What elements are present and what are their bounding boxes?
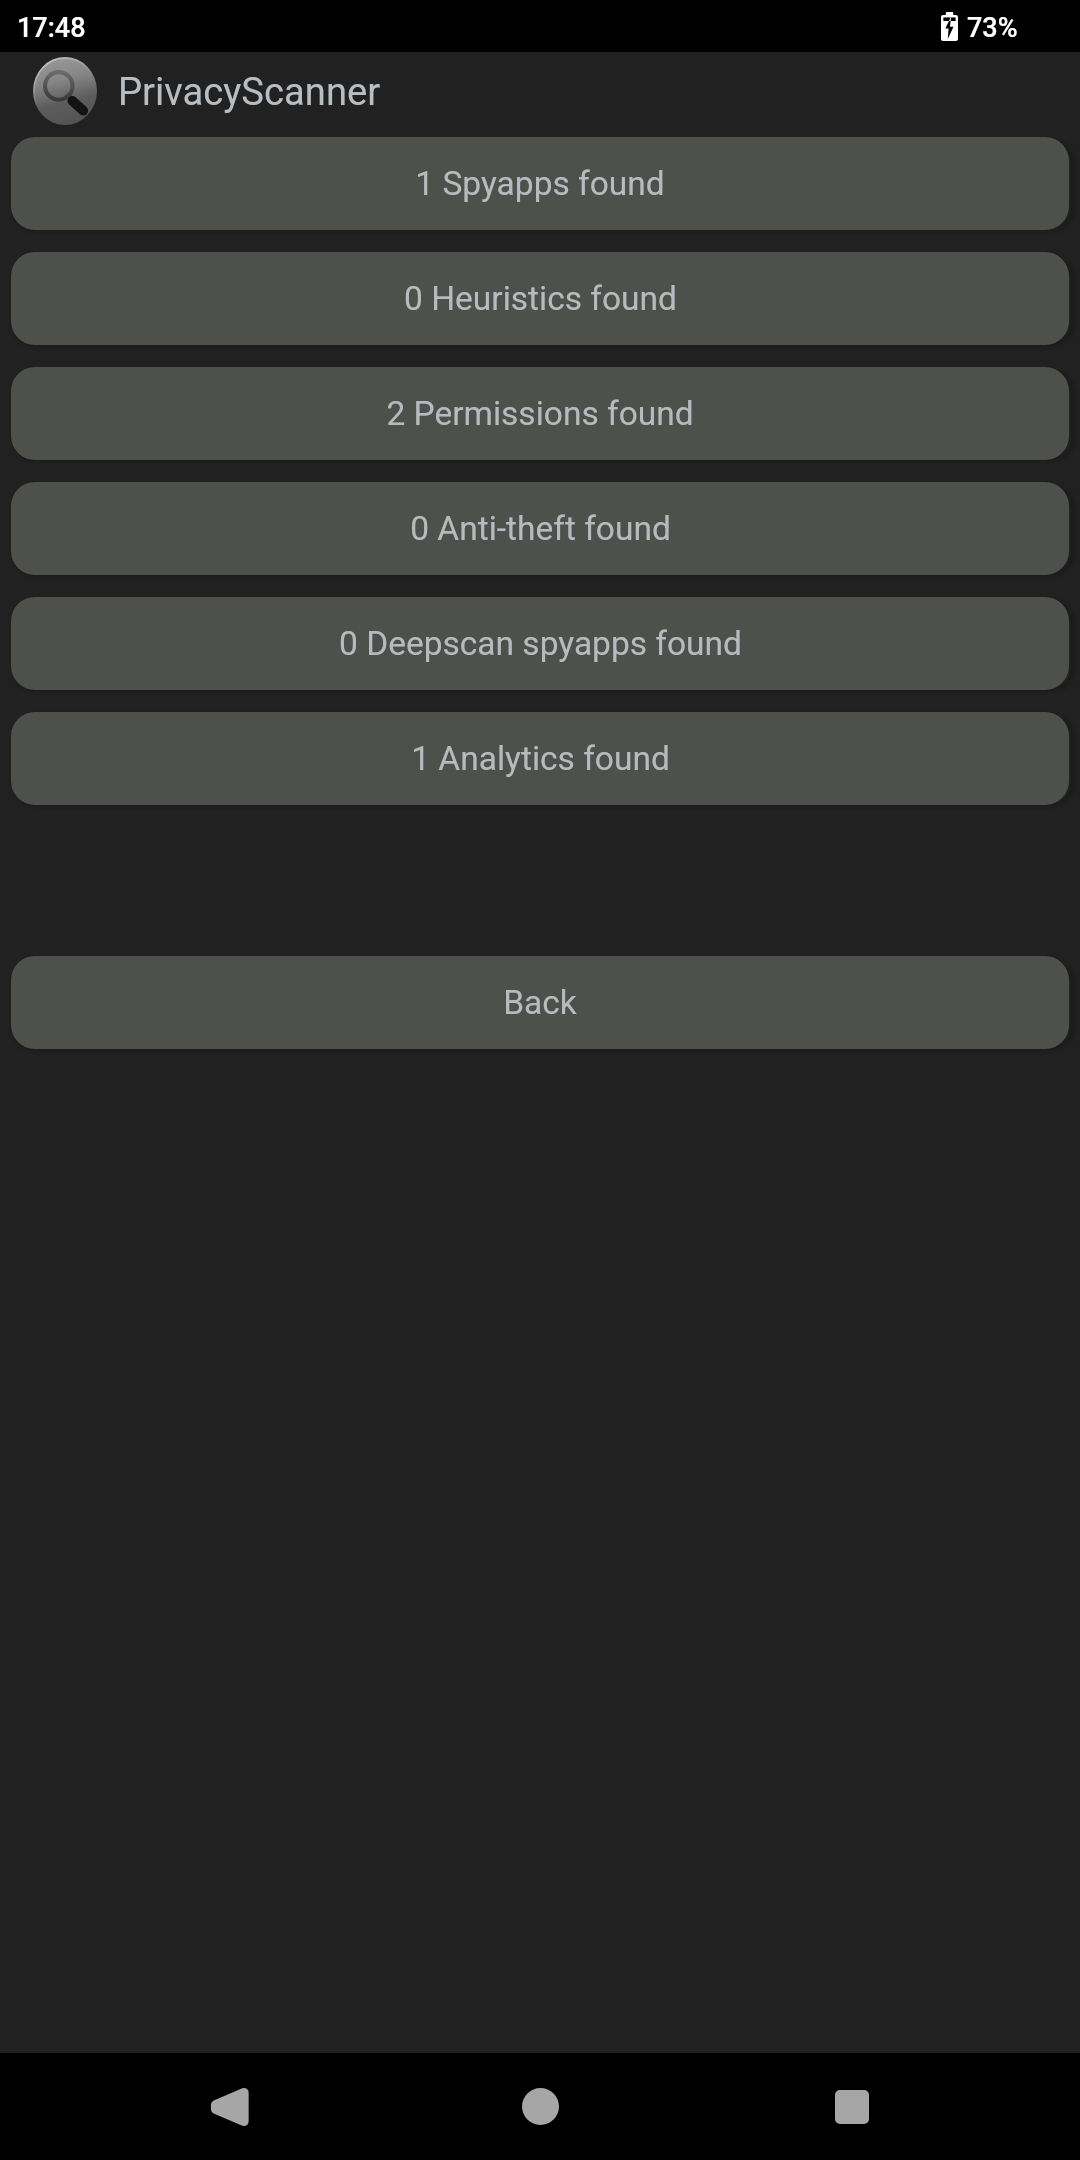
staticText: 0 Anti-theft found: [410, 509, 671, 548]
staticText: 0 Heuristics found: [404, 279, 677, 318]
button[interactable]: 1 Analytics found: [11, 712, 1069, 805]
staticText: 73%: [967, 12, 1018, 44]
staticText: PrivacyScanner: [118, 70, 381, 115]
button[interactable]: Home: [468, 2053, 612, 2160]
button[interactable]: 1 Spyapps found: [11, 137, 1069, 230]
staticText: Back: [503, 983, 577, 1022]
button[interactable]: Back: [155, 2053, 299, 2160]
staticText: 1 Spyapps found: [415, 164, 665, 203]
button[interactable]: 0 Deepscan spyapps found: [11, 597, 1069, 690]
button[interactable]: 2 Permissions found: [11, 367, 1069, 460]
button[interactable]: 0 Heuristics found: [11, 252, 1069, 345]
staticText: 0 Deepscan spyapps found: [339, 624, 742, 663]
button[interactable]: 0 Anti-theft found: [11, 482, 1069, 575]
staticText: 17:48: [17, 12, 86, 44]
button[interactable]: Back: [11, 956, 1069, 1049]
staticText: 2 Permissions found: [386, 394, 694, 433]
button[interactable]: Recent apps: [780, 2053, 924, 2160]
staticText: 1 Analytics found: [411, 739, 670, 778]
